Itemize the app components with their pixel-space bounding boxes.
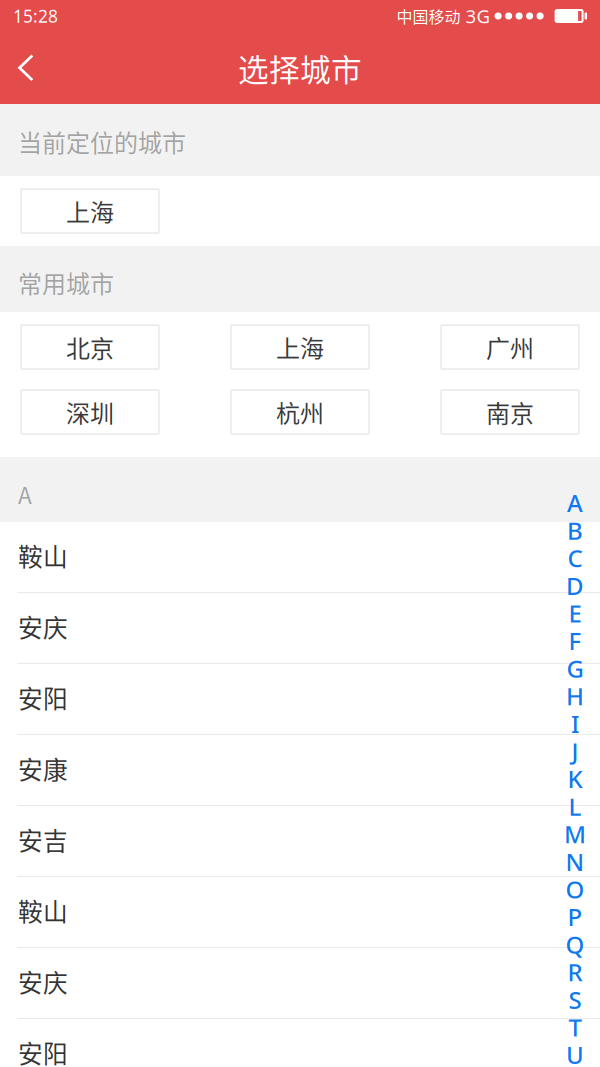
button[interactable]: 北京	[21, 325, 159, 369]
button[interactable]: Q	[560, 931, 590, 958]
staticText: G	[566, 652, 583, 684]
staticText: 安庆	[18, 964, 68, 999]
button[interactable]: K	[560, 765, 590, 793]
staticText: H	[566, 680, 584, 712]
button[interactable]: S	[560, 986, 590, 1013]
button[interactable]: 安庆	[0, 593, 600, 664]
staticText: L	[568, 790, 581, 822]
staticText: S	[568, 984, 581, 1016]
staticText: F	[568, 625, 581, 657]
button[interactable]: E	[560, 599, 590, 627]
staticText: U	[566, 1039, 584, 1067]
button[interactable]: H	[560, 682, 590, 710]
button[interactable]: M	[560, 820, 590, 848]
staticText: N	[565, 846, 584, 878]
button[interactable]: 安康	[0, 735, 600, 806]
button[interactable]: 广州	[441, 325, 579, 369]
button[interactable]: J	[560, 737, 590, 765]
staticText: A	[18, 478, 32, 510]
staticText: 安吉	[18, 822, 68, 857]
button[interactable]: C	[560, 544, 590, 572]
button[interactable]: P	[560, 903, 590, 931]
staticText: 安康	[18, 751, 68, 786]
button[interactable]: A	[560, 489, 590, 517]
staticText: 常用城市	[18, 265, 114, 300]
button[interactable]: 安庆	[0, 948, 600, 1019]
button[interactable]: U	[560, 1041, 590, 1067]
button[interactable]: 上海	[231, 325, 369, 369]
staticText: 北京	[66, 330, 114, 364]
button[interactable]: G	[560, 655, 590, 682]
staticText: 安庆	[18, 609, 68, 644]
staticText: K	[567, 763, 582, 795]
button[interactable]: Back	[0, 32, 53, 104]
button[interactable]: 深圳	[21, 390, 159, 434]
staticText: 杭州	[276, 395, 324, 429]
staticText: 中国移动	[397, 4, 461, 28]
button[interactable]: I	[560, 710, 590, 737]
button[interactable]: B	[560, 517, 590, 544]
staticText: 3G	[461, 4, 491, 28]
staticText: D	[566, 570, 584, 602]
staticText: A	[567, 487, 583, 519]
button[interactable]: N	[560, 848, 590, 875]
button[interactable]: O	[560, 875, 590, 903]
staticText: M	[564, 818, 586, 850]
button[interactable]: 鞍山	[0, 877, 600, 948]
staticText: 安阳	[18, 680, 68, 715]
staticText: 深圳	[66, 395, 114, 429]
staticText: 上海	[276, 330, 324, 364]
staticText: 上海	[66, 194, 114, 228]
button[interactable]: R	[560, 958, 590, 986]
button[interactable]: F	[560, 627, 590, 655]
staticText: 15:28	[13, 4, 58, 27]
staticText: T	[568, 1011, 581, 1043]
button[interactable]: 南京	[441, 390, 579, 434]
button[interactable]: 安阳	[0, 664, 600, 735]
staticText: 鞍山	[18, 893, 68, 928]
staticText: C	[567, 542, 582, 574]
staticText: R	[567, 956, 582, 988]
button[interactable]: D	[560, 572, 590, 599]
button[interactable]: 杭州	[231, 390, 369, 434]
staticText: I	[571, 708, 579, 740]
staticText: B	[567, 514, 583, 546]
staticText: 当前定位的城市	[18, 124, 186, 159]
button[interactable]: T	[560, 1013, 590, 1041]
staticText: 广州	[486, 330, 534, 364]
staticText: 安阳	[18, 1035, 68, 1067]
staticText: E	[568, 597, 581, 629]
button[interactable]: L	[560, 793, 590, 820]
staticText: 选择城市	[238, 46, 362, 90]
button[interactable]: 安吉	[0, 806, 600, 877]
staticText: O	[565, 873, 584, 905]
staticText: 南京	[486, 395, 534, 429]
button[interactable]: 安阳	[0, 1019, 600, 1067]
button[interactable]: 鞍山	[0, 522, 600, 593]
button[interactable]: 上海	[21, 189, 159, 233]
staticText: P	[567, 901, 582, 933]
staticText: J	[571, 735, 578, 767]
staticText: Q	[565, 928, 584, 960]
staticText: 鞍山	[18, 538, 68, 573]
